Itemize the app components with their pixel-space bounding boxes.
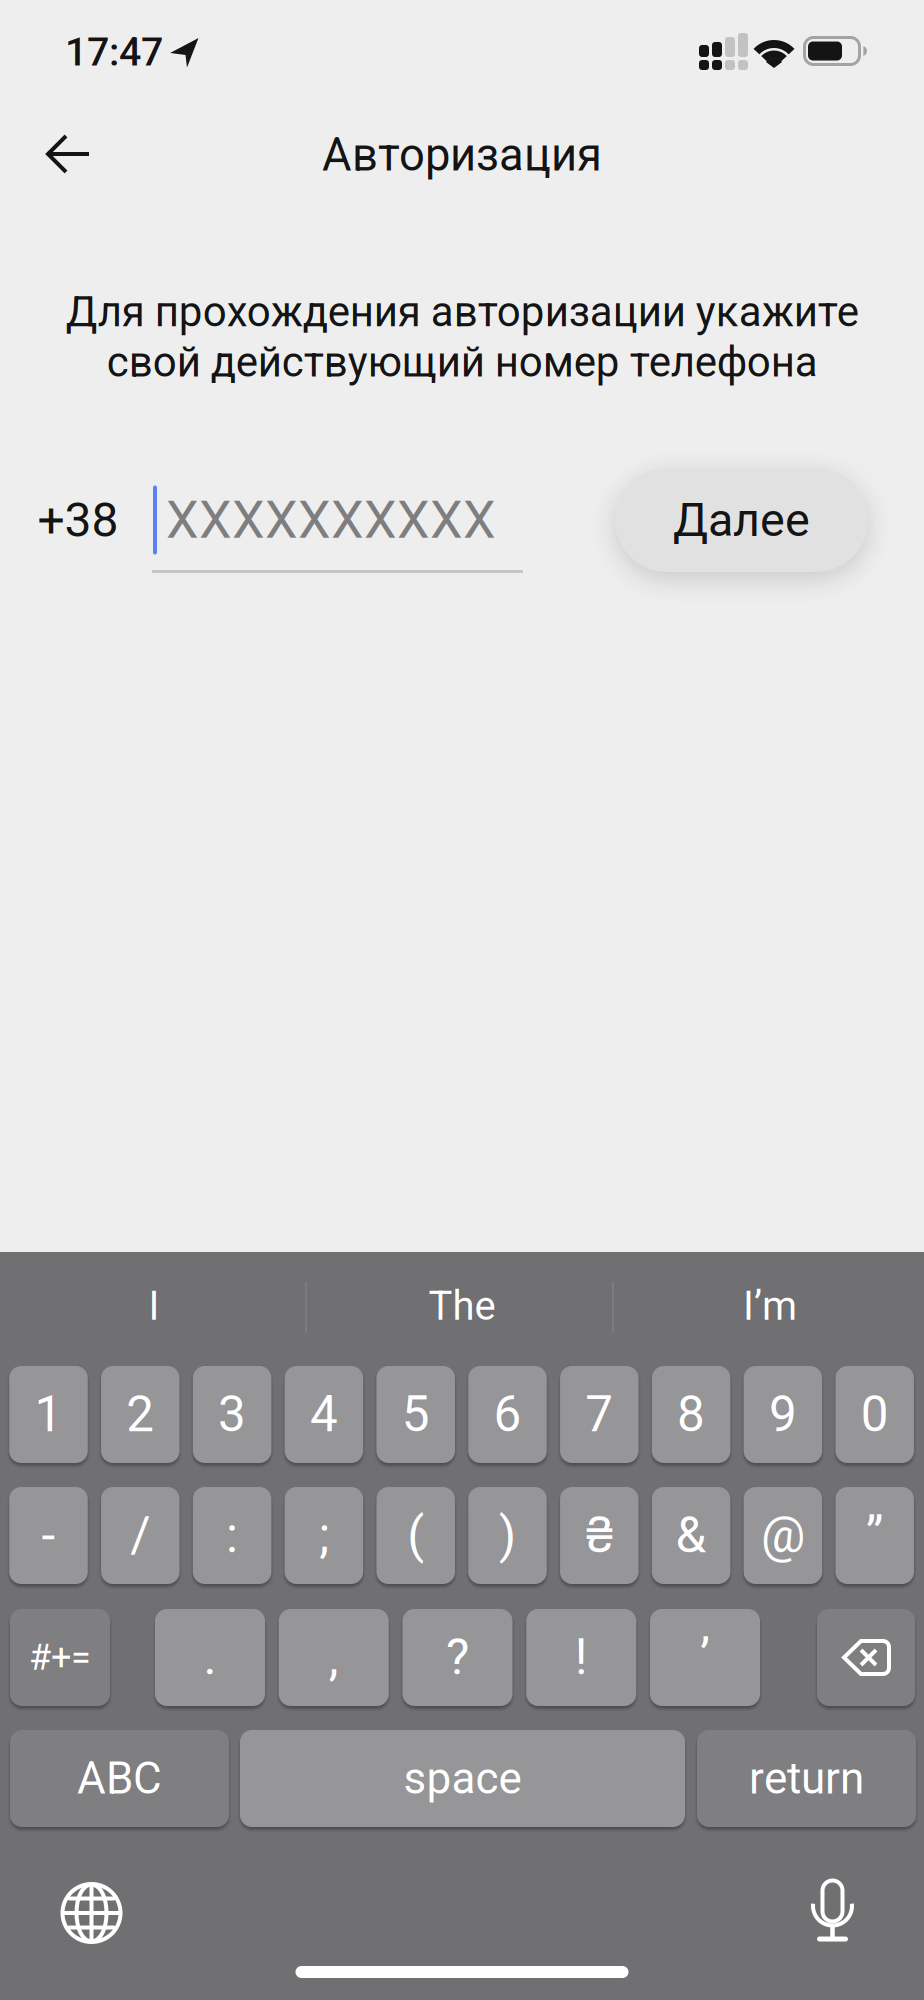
staticText: ? <box>446 1629 469 1686</box>
button[interactable]: 8 <box>652 1366 730 1463</box>
button[interactable]: I <box>9 1261 299 1351</box>
button[interactable]: ’ <box>650 1609 760 1706</box>
button[interactable]: 1 <box>9 1366 88 1463</box>
staticText: 1 <box>34 1386 62 1443</box>
button[interactable]: / <box>101 1487 180 1584</box>
button[interactable]: I’m <box>625 1261 915 1351</box>
button[interactable]: ) <box>468 1487 547 1584</box>
staticText: ) <box>499 1507 516 1564</box>
button[interactable]: 6 <box>468 1366 547 1463</box>
button[interactable]: . <box>155 1609 265 1706</box>
staticText: ( <box>407 1507 424 1564</box>
button[interactable]: ? <box>402 1609 512 1706</box>
button[interactable]: 9 <box>744 1366 822 1463</box>
button[interactable]: Dictate <box>807 1876 857 1946</box>
staticText: 2 <box>126 1386 154 1443</box>
button[interactable]: ( <box>376 1487 455 1584</box>
button[interactable]: @ <box>744 1487 822 1584</box>
staticText: : <box>226 1507 238 1564</box>
staticText: Для прохождения авторизации укажите свой… <box>65 287 858 387</box>
button[interactable]: 7 <box>560 1366 638 1463</box>
button[interactable]: ₴ <box>560 1487 638 1584</box>
staticText: #+= <box>29 1636 91 1679</box>
staticText: +38 <box>37 492 118 548</box>
staticText: & <box>676 1507 707 1564</box>
staticText: ₴ <box>585 1507 613 1564</box>
staticText: 17:47 <box>65 29 163 75</box>
button[interactable]: ” <box>835 1487 914 1584</box>
staticText: 0 <box>861 1386 889 1443</box>
staticText: I <box>148 1283 159 1329</box>
button[interactable]: The <box>317 1261 607 1351</box>
staticText: ; <box>319 1507 329 1564</box>
staticText: . <box>203 1629 216 1686</box>
staticText: Далее <box>673 493 810 547</box>
staticText: 9 <box>769 1386 797 1443</box>
staticText: ABC <box>77 1753 162 1804</box>
button[interactable]: 5 <box>376 1366 455 1463</box>
button[interactable]: ! <box>526 1609 636 1706</box>
staticText: , <box>329 1629 339 1686</box>
button[interactable]: 4 <box>285 1366 363 1463</box>
staticText: Авторизация <box>322 128 602 181</box>
button[interactable]: ABC <box>10 1730 229 1827</box>
button[interactable]: Back <box>30 126 106 182</box>
button[interactable]: Далее <box>615 468 868 572</box>
button[interactable]: Delete <box>817 1609 915 1706</box>
button[interactable]: : <box>193 1487 271 1584</box>
staticText: ! <box>575 1629 588 1686</box>
button[interactable]: ; <box>285 1487 363 1584</box>
button[interactable]: space <box>240 1730 685 1827</box>
staticText: 7 <box>585 1386 613 1443</box>
button[interactable]: 3 <box>193 1366 271 1463</box>
staticText: / <box>130 1507 150 1564</box>
button[interactable]: & <box>652 1487 730 1584</box>
button[interactable]: 0 <box>835 1366 914 1463</box>
staticText: The <box>428 1283 495 1329</box>
staticText: return <box>749 1753 864 1804</box>
button[interactable]: #+= <box>10 1609 110 1706</box>
staticText: 5 <box>402 1386 430 1443</box>
button[interactable]: - <box>9 1487 88 1584</box>
button[interactable]: 2 <box>101 1366 180 1463</box>
button[interactable]: return <box>697 1730 916 1827</box>
staticText: 6 <box>493 1386 521 1443</box>
staticText: ” <box>866 1507 884 1564</box>
staticText: ’ <box>700 1629 710 1686</box>
staticText: 3 <box>218 1386 246 1443</box>
button[interactable]: , <box>279 1609 389 1706</box>
button[interactable]: Next keyboard <box>58 1880 124 1946</box>
staticText: 8 <box>677 1386 705 1443</box>
staticText: space <box>403 1753 521 1804</box>
staticText: - <box>41 1507 55 1564</box>
staticText: @ <box>761 1507 805 1564</box>
staticText: 4 <box>310 1386 338 1443</box>
staticText: XXXXXXXXXX <box>166 489 496 550</box>
staticText: I’m <box>743 1283 797 1329</box>
